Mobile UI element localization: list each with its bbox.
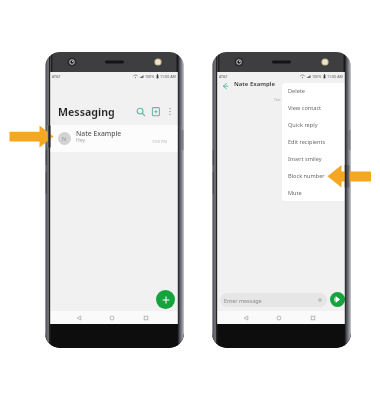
button[interactable]: Search [135,106,147,118]
staticText: Hey [76,137,85,144]
button[interactable]: Mute [282,184,345,201]
staticText: 11:00 AM [327,74,343,79]
button[interactable]: Recent apps [309,311,316,324]
staticText: 7:00 PM [152,139,168,144]
staticText: Mute [288,189,302,197]
staticText: Delete [288,87,306,95]
staticText: Insert smiley [288,155,322,163]
staticText: Text [274,97,281,102]
staticText: Quick reply [288,121,318,129]
staticText: Block number [288,172,325,180]
button[interactable]: Enter message [220,293,327,307]
staticText: View contact [288,104,322,112]
staticText: AT&T [52,74,61,79]
button[interactable]: Quick reply [282,116,345,133]
button[interactable]: Home [275,311,282,324]
button[interactable]: Home [108,311,115,324]
button[interactable]: N [50,125,178,152]
button[interactable]: More options [164,106,176,118]
staticText: 100% [145,74,155,79]
button[interactable]: Navigate up [220,81,230,91]
staticText: Nate Example [76,129,122,138]
button[interactable]: Back [242,311,249,324]
button[interactable]: Edit recipients [282,133,345,150]
staticText: Nate Example [234,80,275,88]
button[interactable]: Recent apps [142,311,149,324]
staticText: 11:00 AM [160,74,176,79]
staticText: AT&T [219,74,228,79]
button[interactable]: Start new conversation [156,290,175,309]
button[interactable]: Back [75,311,82,324]
button[interactable]: Block number [282,167,345,184]
staticText: 100% [312,74,322,79]
staticText: Enter message [224,297,262,304]
button[interactable]: View contact [282,99,345,116]
button[interactable]: New conversation [150,106,162,118]
button[interactable]: Insert smiley [282,150,345,167]
staticText: Edit recipients [288,138,326,146]
button[interactable]: Delete [282,83,345,99]
staticText: Messaging [58,105,115,119]
staticText: N [62,135,67,143]
button[interactable]: Send [330,292,345,307]
